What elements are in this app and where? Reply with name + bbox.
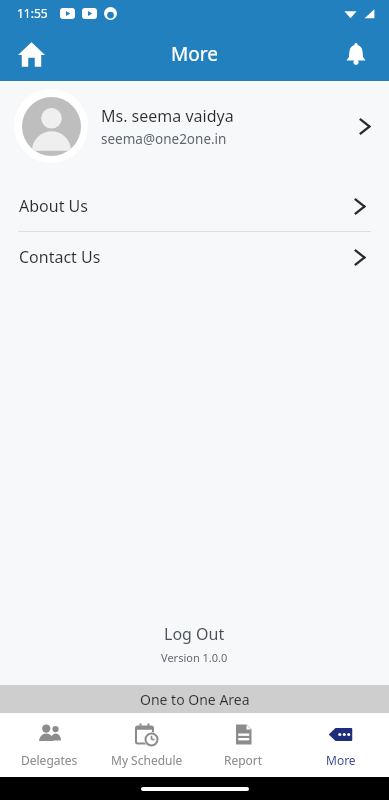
staticText: Delegates xyxy=(21,752,78,768)
staticText: More xyxy=(326,752,356,768)
staticText: Log Out xyxy=(164,623,225,645)
button[interactable]: Report xyxy=(195,722,292,768)
staticText: Version 1.0.0 xyxy=(161,650,228,665)
staticText: One to One Area xyxy=(140,690,250,709)
button[interactable]: Home xyxy=(8,31,54,77)
staticText: Report xyxy=(224,752,263,768)
staticText: About Us xyxy=(19,195,88,217)
staticText: More xyxy=(171,41,218,67)
button[interactable]: Log Out xyxy=(144,620,245,648)
button[interactable]: More xyxy=(292,722,389,768)
staticText: seema@one2one.in xyxy=(101,130,227,148)
button[interactable]: About Us xyxy=(0,181,389,231)
staticText: Ms. seema vaidya xyxy=(101,105,234,127)
button[interactable]: My Schedule xyxy=(98,722,195,768)
button[interactable]: Contact Us xyxy=(0,232,389,282)
button[interactable]: Ms. seema vaidya xyxy=(0,81,389,171)
staticText: Contact Us xyxy=(19,246,101,268)
button[interactable]: Delegates xyxy=(0,722,98,768)
staticText: My Schedule xyxy=(111,752,183,768)
button[interactable]: Notifications xyxy=(333,31,379,77)
staticText: 11:55 xyxy=(17,5,48,21)
